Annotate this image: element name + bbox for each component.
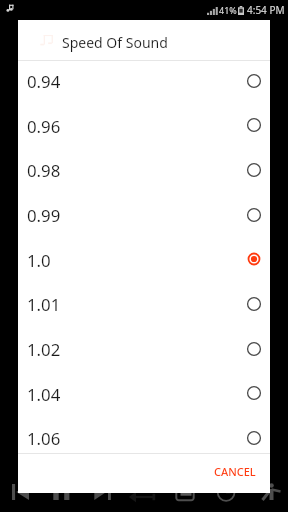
staticText: 1.06	[27, 427, 61, 450]
staticText: 1.02	[27, 338, 61, 361]
staticText: 1.0	[27, 249, 51, 272]
button[interactable]: 0.99	[18, 193, 270, 238]
staticText: 4:54 PM	[247, 3, 285, 17]
staticText: 1.04	[27, 383, 61, 406]
button[interactable]: 0.96	[18, 104, 270, 148]
button[interactable]: 1.01	[18, 282, 270, 327]
button[interactable]: Recent apps	[212, 482, 240, 506]
button[interactable]: Pause	[48, 482, 76, 504]
button[interactable]: Accessibility	[258, 480, 286, 504]
staticText: 1.01	[27, 293, 61, 316]
staticText: 0.96	[27, 115, 61, 138]
staticText: 41%	[219, 4, 237, 16]
staticText: 0.94	[27, 70, 61, 93]
button[interactable]: Home	[172, 482, 198, 504]
button[interactable]: Back	[126, 488, 158, 504]
staticText: 0.99	[27, 204, 61, 227]
button[interactable]: 0.94	[18, 61, 270, 104]
staticText: CANCEL	[214, 464, 256, 479]
staticText: 0.98	[27, 159, 61, 182]
staticText: Speed Of Sound	[62, 33, 168, 52]
button[interactable]: 1.04	[18, 372, 270, 416]
button[interactable]: 1.02	[18, 327, 270, 372]
button[interactable]: Next track	[90, 482, 118, 504]
button[interactable]: 1.0	[18, 238, 270, 282]
button[interactable]: 0.98	[18, 148, 270, 193]
button[interactable]: Previous track	[6, 482, 34, 504]
button[interactable]: CANCEL	[200, 458, 270, 489]
button[interactable]: 1.06	[18, 416, 270, 453]
